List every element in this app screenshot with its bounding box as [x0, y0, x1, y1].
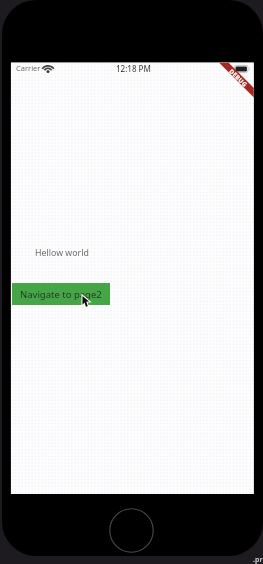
- button[interactable]: Home: [109, 508, 154, 553]
- staticText: .pr: [253, 555, 263, 564]
- button[interactable]: Navigate to page2: [12, 283, 110, 305]
- staticText: 12:18 PM: [116, 63, 151, 74]
- staticText: Carrier: [16, 63, 41, 73]
- staticText: Navigate to page2: [20, 288, 102, 301]
- staticText: DEBUG: [227, 67, 249, 89]
- staticText: Hellow world: [35, 247, 89, 259]
